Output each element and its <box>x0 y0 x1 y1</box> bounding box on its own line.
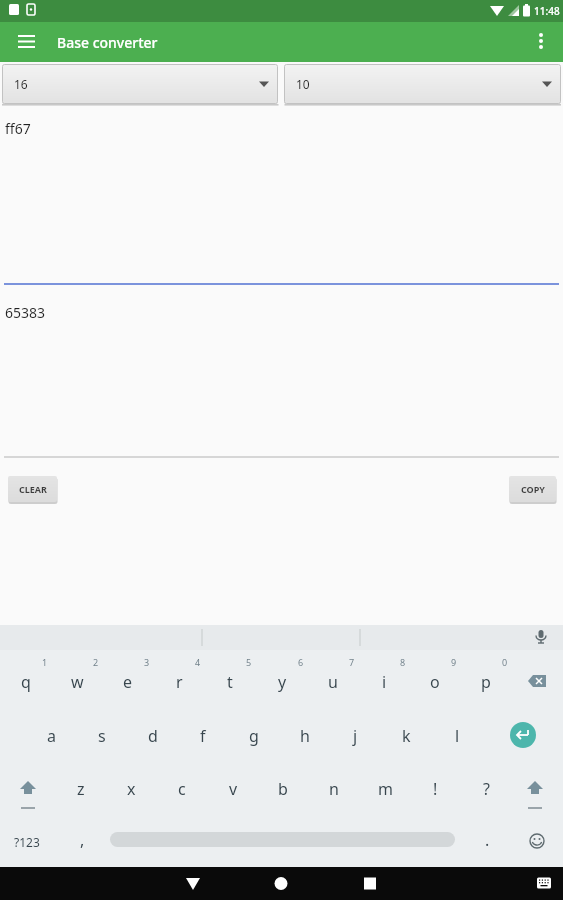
staticText: p <box>481 671 491 693</box>
button[interactable]: 10 <box>284 64 561 104</box>
staticText: i <box>382 671 387 693</box>
staticText: CLEAR <box>19 483 47 495</box>
staticText: h <box>300 725 310 747</box>
staticText: u <box>328 671 338 693</box>
staticText: d <box>148 725 158 747</box>
button[interactable]: 1 <box>25 650 65 674</box>
staticText: 65383 <box>5 303 46 322</box>
button[interactable]: g <box>234 724 274 748</box>
staticText: 6 <box>298 656 304 668</box>
button[interactable]: l <box>437 724 477 748</box>
staticText: z <box>77 778 85 800</box>
button[interactable]: 5 <box>229 650 269 674</box>
staticText: ? <box>483 778 490 800</box>
staticText: COPY <box>521 483 545 495</box>
staticText: 7 <box>349 656 355 668</box>
staticText: t <box>227 671 233 693</box>
button[interactable]: 16 <box>2 64 278 104</box>
button[interactable]: q <box>6 670 46 694</box>
staticText: n <box>329 778 339 800</box>
button[interactable]: CLEAR <box>8 476 57 502</box>
staticText: j <box>353 725 358 747</box>
staticText: 4 <box>195 656 201 668</box>
button[interactable]: , <box>62 828 102 852</box>
staticText: r <box>176 671 183 693</box>
button[interactable]: 9 <box>434 650 474 674</box>
button[interactable]: 8 <box>383 650 423 674</box>
staticText: b <box>278 778 288 800</box>
staticText: x <box>127 778 136 800</box>
button[interactable]: b <box>263 777 303 801</box>
staticText: 5 <box>246 656 252 668</box>
staticText: 3 <box>144 656 150 668</box>
button[interactable]: i <box>364 670 404 694</box>
button[interactable]: y <box>262 670 302 694</box>
staticText: 16 <box>14 76 28 92</box>
button[interactable]: 7 <box>332 650 372 674</box>
button[interactable] <box>375 867 563 900</box>
staticText: o <box>430 671 440 693</box>
button[interactable]: p <box>466 670 506 694</box>
button[interactable]: j <box>335 724 375 748</box>
staticText: . <box>485 829 490 851</box>
staticText: ! <box>433 778 438 800</box>
button[interactable]: ? <box>466 777 506 801</box>
button[interactable]: . <box>467 828 507 852</box>
staticText: ff67 <box>5 119 31 138</box>
staticText: y <box>278 671 287 693</box>
staticText: m <box>378 778 393 800</box>
button[interactable]: u <box>313 670 353 694</box>
button[interactable]: 2 <box>76 650 116 674</box>
button[interactable]: c <box>162 777 202 801</box>
staticText: s <box>98 725 106 747</box>
button[interactable]: 4 <box>178 650 218 674</box>
button[interactable]: z <box>61 777 101 801</box>
button[interactable]: w <box>57 670 97 694</box>
staticText: l <box>455 725 460 747</box>
button[interactable]: v <box>213 777 253 801</box>
button[interactable]: COPY <box>509 476 556 502</box>
button[interactable]: n <box>314 777 354 801</box>
staticText: 8 <box>400 656 406 668</box>
button[interactable] <box>10 26 42 58</box>
button[interactable] <box>527 28 555 56</box>
staticText: ?123 <box>14 834 40 850</box>
button[interactable]: r <box>159 670 199 694</box>
staticText: f <box>200 725 206 747</box>
staticText: 9 <box>451 656 457 668</box>
button[interactable]: s <box>82 724 122 748</box>
staticText: k <box>402 725 411 747</box>
button[interactable]: 3 <box>127 650 167 674</box>
button[interactable]: e <box>108 670 148 694</box>
staticText: 11:48 <box>534 4 560 18</box>
staticText: Base converter <box>57 33 158 52</box>
staticText: 0 <box>502 656 508 668</box>
button[interactable]: a <box>31 724 71 748</box>
button[interactable]: ! <box>415 777 455 801</box>
staticText: q <box>21 671 31 693</box>
button[interactable]: k <box>386 724 426 748</box>
staticText: w <box>71 671 84 693</box>
staticText: , <box>80 829 85 851</box>
button[interactable]: h <box>285 724 325 748</box>
staticText: g <box>249 725 259 747</box>
staticText: 1 <box>42 656 48 668</box>
button[interactable]: x <box>111 777 151 801</box>
button[interactable]: ?123 <box>7 830 47 854</box>
button[interactable] <box>187 867 375 900</box>
staticText: e <box>123 671 133 693</box>
button[interactable]: t <box>210 670 250 694</box>
button[interactable]: m <box>365 777 405 801</box>
button[interactable]: f <box>183 724 223 748</box>
staticText: 2 <box>93 656 99 668</box>
staticText: 10 <box>296 76 310 92</box>
button[interactable]: 0 <box>485 650 525 674</box>
button[interactable]: d <box>133 724 173 748</box>
button[interactable]: o <box>415 670 455 694</box>
staticText: a <box>47 725 56 747</box>
staticText: v <box>229 778 238 800</box>
staticText: c <box>178 778 186 800</box>
button[interactable]: 6 <box>281 650 321 674</box>
